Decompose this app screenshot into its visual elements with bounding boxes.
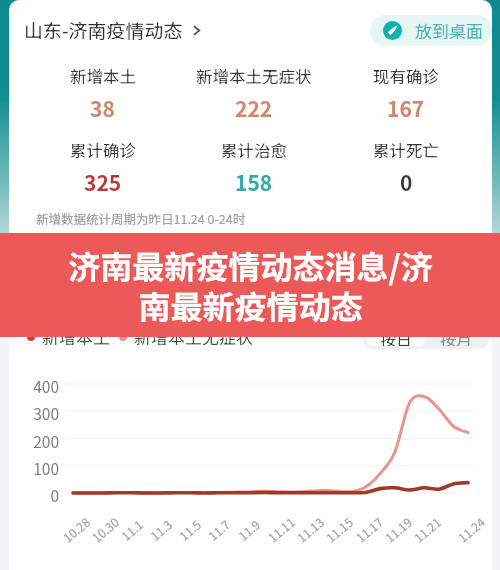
button[interactable]: 新增本土: [27, 64, 178, 123]
staticText: 累计死亡: [373, 138, 439, 162]
button[interactable]: 济南最新疫情动态消息/济 南最新疫情动态: [0, 233, 500, 337]
staticText: 11.9: [234, 515, 264, 544]
staticText: 11.15: [322, 513, 356, 546]
button[interactable]: 按月: [426, 327, 486, 346]
staticText: 累计治愈: [221, 138, 287, 162]
staticText: 11.21: [410, 513, 444, 546]
staticText: 0: [400, 167, 413, 197]
staticText: 11.24: [454, 513, 488, 546]
staticText: 11.1: [117, 515, 147, 544]
staticText: 济南最新疫情动态消息/济 南最新疫情动态: [68, 242, 433, 328]
staticText: 11.11: [264, 513, 298, 546]
staticText: 300: [22, 402, 59, 424]
staticText: 222: [235, 93, 273, 123]
staticText: 11.5: [175, 515, 205, 544]
staticText: 100: [22, 457, 59, 479]
button[interactable]: 累计死亡: [330, 138, 482, 197]
staticText: 38: [90, 93, 115, 123]
other: 放到桌面: [383, 21, 402, 40]
staticText: 11.7: [204, 515, 234, 544]
button[interactable]: 高风险区 12个: [30, 243, 180, 286]
button[interactable]: 按日: [366, 327, 426, 346]
button[interactable]: 新增本土无症状: [178, 64, 330, 123]
staticText: 11.13: [293, 513, 327, 546]
staticText: 现有确诊: [373, 64, 439, 88]
staticText: 11.19: [381, 513, 415, 546]
staticText: 325: [84, 167, 122, 197]
button[interactable]: 放到桌面: [370, 15, 492, 46]
staticText: 10.30: [88, 513, 122, 546]
staticText: 累计确诊: [70, 138, 136, 162]
button[interactable]: 山东-济南疫情动态: [24, 16, 203, 44]
staticText: 高风险区 12个: [40, 254, 136, 276]
button[interactable]: 累计治愈: [178, 138, 330, 197]
button[interactable]: 现有确诊: [330, 64, 482, 123]
staticText: 放到桌面: [415, 18, 483, 43]
staticText: 新增本土: [70, 64, 136, 88]
staticText: 新增数据统计周期为昨日11.24 0-24时: [36, 209, 246, 227]
staticText: 200: [22, 430, 59, 452]
staticText: 11.3: [146, 515, 176, 544]
staticText: 山东-济南疫情动态: [24, 16, 183, 44]
staticText: 158: [235, 167, 273, 197]
button[interactable]: 累计确诊: [27, 138, 178, 197]
staticText: 400: [22, 375, 59, 397]
staticText: 新增本土: [42, 324, 110, 349]
staticText: 新增本土无症状: [196, 64, 312, 88]
staticText: 0: [22, 484, 59, 506]
staticText: 按月: [440, 327, 473, 346]
staticText: 167: [387, 93, 425, 123]
staticText: 10.28: [59, 513, 93, 546]
staticText: 按日: [380, 327, 413, 346]
staticText: 新增本土无症状: [134, 324, 253, 349]
staticText: 11.17: [352, 513, 386, 546]
